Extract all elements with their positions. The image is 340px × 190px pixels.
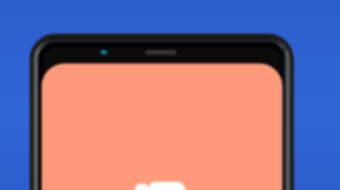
button[interactable]: App preview screen [42,64,283,190]
button[interactable]: Front camera [97,46,111,59]
button[interactable]: Earpiece speaker [143,46,179,59]
